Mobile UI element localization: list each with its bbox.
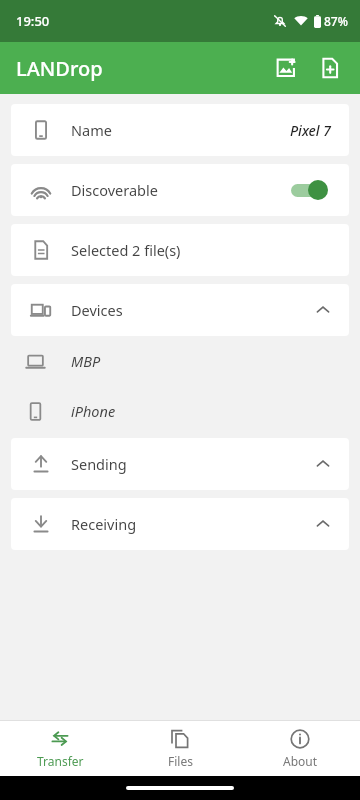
button[interactable]: Files [120, 721, 240, 776]
staticText: Discoverable [71, 180, 287, 200]
button[interactable]: Receiving [11, 498, 349, 550]
button[interactable]: Add image [264, 46, 308, 90]
staticText: MBP [71, 351, 101, 371]
button[interactable]: MBP [0, 336, 360, 386]
staticText: Devices [71, 300, 315, 320]
button[interactable]: Sending [11, 438, 349, 490]
staticText: Pixel 7 [290, 121, 331, 140]
staticText: Sending [71, 454, 315, 474]
staticText: Receiving [71, 514, 315, 534]
button[interactable]: Add file [308, 46, 352, 90]
button[interactable]: Selected 2 file(s) [11, 224, 349, 276]
button[interactable]: Transfer [0, 721, 120, 776]
staticText: About [283, 753, 318, 769]
staticText: Transfer [37, 753, 84, 769]
staticText: LANDrop [16, 55, 103, 82]
button[interactable]: Discoverable [11, 164, 349, 216]
button[interactable]: iPhone [0, 386, 360, 436]
staticText: Selected 2 file(s) [71, 240, 331, 260]
staticText: 19:50 [16, 12, 50, 30]
button[interactable]: Devices [11, 284, 349, 336]
staticText: iPhone [71, 401, 116, 421]
staticText: Name [71, 120, 290, 140]
staticText: Files [168, 753, 193, 769]
staticText: 87% [324, 13, 348, 29]
button[interactable]: Name [11, 104, 349, 156]
button[interactable]: About [240, 721, 360, 776]
